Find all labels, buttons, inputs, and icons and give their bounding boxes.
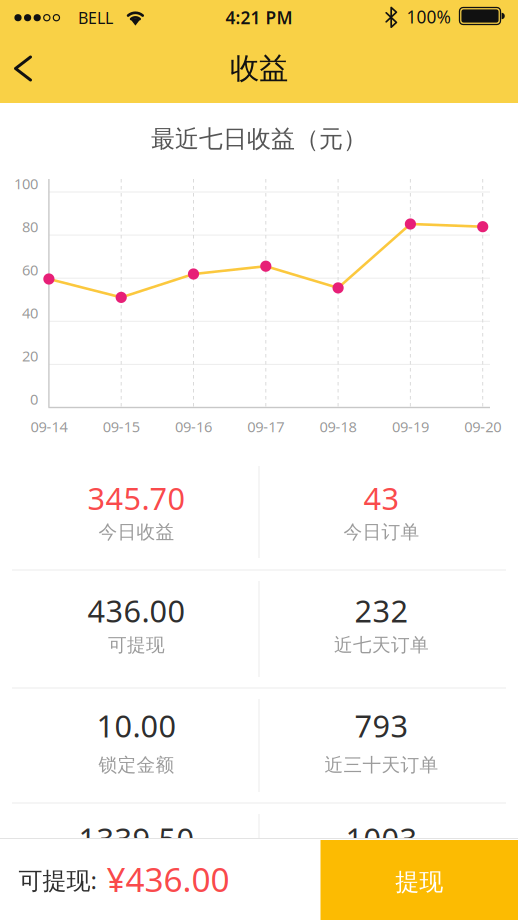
staticText: 4:21 PM [225,6,292,29]
staticText: 20 [22,346,38,366]
staticText: 60 [22,260,38,279]
staticText: 09-19 [392,417,429,436]
staticText: 100 [14,174,38,193]
staticText: 今日收益 [98,520,174,543]
staticText: 09-18 [320,417,357,436]
staticText: 10.00 [96,705,176,746]
staticText: 09-15 [103,417,140,436]
button[interactable]: Back [0,45,46,91]
staticText: 80 [22,217,38,236]
staticText: 09-16 [175,417,212,436]
staticText: 09-20 [464,417,501,436]
staticText: 近七天订单 [334,633,429,656]
staticText: 近三十天订单 [324,753,438,776]
staticText: 43 [363,478,399,518]
staticText: 436.00 [87,590,185,631]
staticText: 09-17 [247,417,284,436]
staticText: 提现 [395,867,443,897]
staticText: 40 [22,303,38,323]
staticText: 可提现: [18,864,96,896]
staticText: 09-14 [30,417,67,436]
button[interactable]: 提现 [320,840,518,920]
staticText: 锁定金额 [98,753,174,776]
staticText: 345.70 [87,478,185,518]
staticText: 793 [354,705,408,746]
staticText: 可提现 [108,633,165,656]
staticText: 今日订单 [343,520,419,543]
staticText: 收益 [230,50,288,86]
staticText: 100% [406,5,450,28]
staticText: 232 [354,590,408,631]
staticText: 1003 [345,818,417,859]
staticText: 0 [30,389,38,409]
staticText: 最近七日收益（元） [151,124,367,154]
staticText: ¥436.00 [106,857,229,901]
staticText: BELL [78,7,113,28]
staticText: 1339.50 [78,818,194,859]
